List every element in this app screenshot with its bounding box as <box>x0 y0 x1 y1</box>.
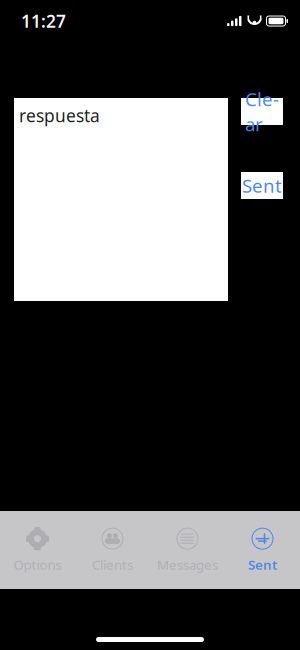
button[interactable]: Sent <box>241 172 283 199</box>
button[interactable]: Clients <box>75 511 150 589</box>
staticText: Sent <box>242 173 282 198</box>
button[interactable]: Messages <box>150 511 225 589</box>
staticText: Sent <box>248 556 277 573</box>
button[interactable]: Sent <box>225 511 300 589</box>
staticText: respuesta <box>19 104 100 127</box>
staticText: Clear <box>245 87 279 136</box>
staticText: Messages <box>157 556 218 573</box>
button[interactable]: Options <box>0 511 75 589</box>
staticText: 11:27 <box>21 9 66 32</box>
button[interactable]: Clear <box>241 98 283 125</box>
staticText: Options <box>13 556 61 573</box>
staticText: Clients <box>92 556 133 573</box>
